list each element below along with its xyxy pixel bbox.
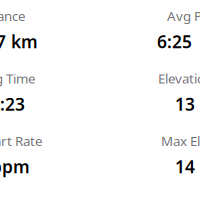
staticText: 6:25 <box>157 30 192 53</box>
staticText: 34:23 <box>0 92 25 115</box>
staticText: Moving Time <box>0 69 36 87</box>
staticText: Distance <box>0 7 26 25</box>
staticText: 152 bpm <box>0 155 30 178</box>
staticText: Heart Rate <box>0 132 43 150</box>
staticText: Avg Pace <box>167 7 200 25</box>
staticText: 5.27 km <box>0 30 38 53</box>
staticText: Max Elevation <box>161 132 200 150</box>
staticText: Elevation <box>158 69 200 87</box>
staticText: 14 <box>175 155 195 178</box>
staticText: 13 <box>175 92 195 115</box>
